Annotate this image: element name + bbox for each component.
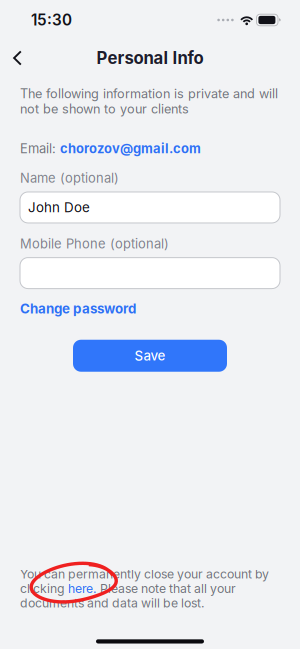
staticText: You can permanently close your account b… xyxy=(20,567,269,610)
staticText: 15:30 xyxy=(31,11,72,29)
staticText: Change password xyxy=(20,301,136,317)
staticText: John Doe xyxy=(28,199,90,215)
staticText: The following information is private and… xyxy=(20,86,278,117)
staticText: Email: xyxy=(20,141,60,156)
staticText: Personal Info xyxy=(96,48,203,68)
button[interactable]: Change password xyxy=(20,297,136,321)
button[interactable]: Save xyxy=(73,340,227,372)
staticText: Name (optional) xyxy=(20,170,119,186)
staticText: chorozov@gmail.com xyxy=(60,141,201,156)
staticText: Save xyxy=(134,348,165,364)
button[interactable]: Back xyxy=(0,41,34,69)
staticText: Mobile Phone (optional) xyxy=(20,236,169,252)
